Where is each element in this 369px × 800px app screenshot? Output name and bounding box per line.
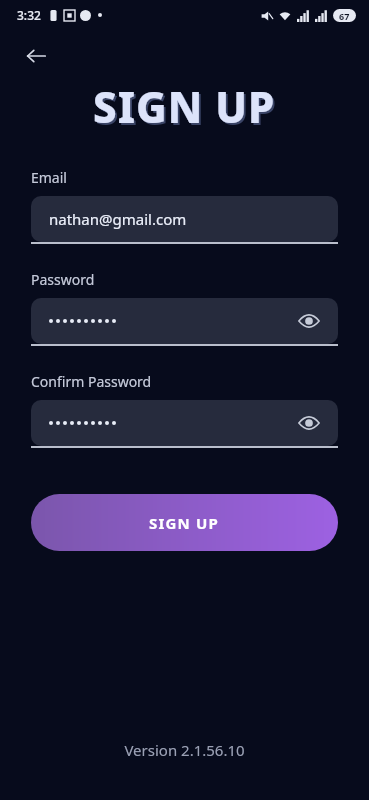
staticText: Password	[31, 270, 95, 289]
staticText: SIGN UP	[93, 78, 276, 126]
button[interactable]: Back	[14, 34, 58, 78]
staticText: 3:32	[17, 7, 41, 23]
button[interactable]: Show password	[31, 298, 338, 344]
button[interactable]: nathan@gmail.com	[31, 196, 338, 242]
staticText: 67	[339, 10, 350, 22]
button[interactable]: Show password	[31, 400, 338, 446]
staticText: nathan@gmail.com	[49, 209, 187, 229]
staticText: Version 2.1.56.10	[0, 740, 369, 760]
button[interactable]: SIGN UP	[31, 494, 338, 551]
staticText: Confirm Password	[31, 372, 152, 391]
staticText: SIGN UP	[149, 513, 220, 533]
button[interactable]: Show password	[294, 408, 324, 438]
button[interactable]: Show password	[294, 306, 324, 336]
staticText: Email	[31, 168, 67, 187]
staticText: SIGN UP	[95, 80, 278, 128]
